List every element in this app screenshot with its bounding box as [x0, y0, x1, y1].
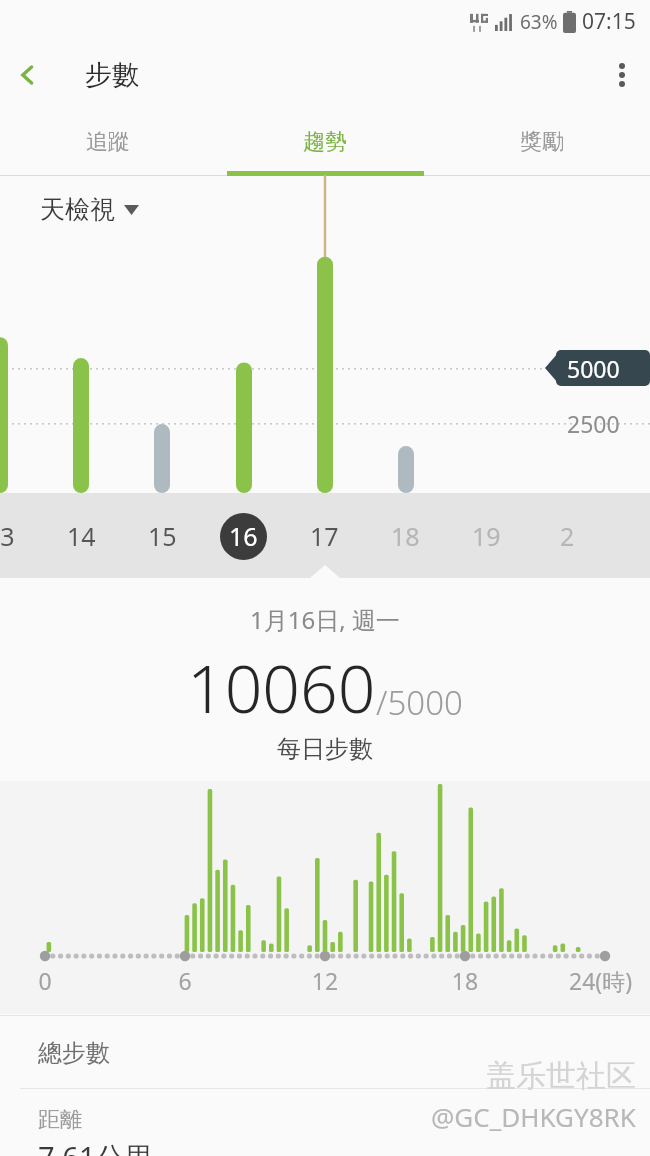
staticText: 6	[171, 965, 199, 996]
staticText: 19	[472, 519, 501, 553]
button[interactable]: More options	[594, 47, 650, 103]
staticText: 2	[560, 519, 575, 553]
staticText: 17	[310, 519, 339, 553]
button[interactable]: 17	[296, 508, 352, 564]
staticText: 趨勢	[303, 128, 347, 156]
staticText: 天檢視	[40, 194, 115, 225]
button[interactable]: 13	[0, 508, 28, 564]
staticText: 14	[67, 519, 96, 553]
staticText: 追蹤	[86, 128, 130, 156]
staticText: 10060	[187, 642, 376, 732]
button[interactable]: 16	[215, 508, 271, 564]
staticText: 步數	[85, 58, 139, 92]
staticText: 24(時)	[569, 965, 633, 996]
staticText: 16	[229, 519, 258, 553]
button[interactable]: Back	[0, 47, 56, 103]
staticText: 每日步數	[277, 734, 373, 764]
staticText: 盖乐世社区	[486, 1057, 636, 1095]
button[interactable]: 2	[539, 508, 595, 564]
staticText: 總步數	[38, 1038, 110, 1068]
staticText: 13	[0, 519, 15, 553]
button[interactable]: 趨勢	[216, 108, 433, 176]
staticText: 12	[311, 965, 339, 996]
button[interactable]: 總步數	[0, 1014, 650, 1156]
button[interactable]: 15	[134, 508, 190, 564]
staticText: 5000	[567, 353, 620, 384]
button[interactable]: 18	[377, 508, 433, 564]
staticText: 18	[391, 519, 420, 553]
button[interactable]: 追蹤	[0, 108, 216, 176]
staticText: 距離	[38, 1106, 82, 1134]
staticText: @GC_DHKGY8RK	[431, 1099, 636, 1134]
button[interactable]: 19	[458, 508, 514, 564]
staticText: 7.61公里	[38, 1137, 154, 1156]
staticText: 1月16日, 週一	[250, 603, 400, 636]
staticText: 18	[451, 965, 479, 996]
staticText: 63%	[520, 9, 558, 35]
staticText: /5000	[376, 680, 463, 725]
staticText: 0	[31, 965, 59, 996]
staticText: 07:15	[582, 7, 636, 36]
staticText: 2500	[567, 408, 620, 439]
button[interactable]: 14	[53, 508, 109, 564]
staticText: 獎勵	[520, 128, 564, 156]
button[interactable]: 獎勵	[433, 108, 650, 176]
button[interactable]: 天檢視	[40, 194, 139, 225]
staticText: 15	[148, 519, 177, 553]
